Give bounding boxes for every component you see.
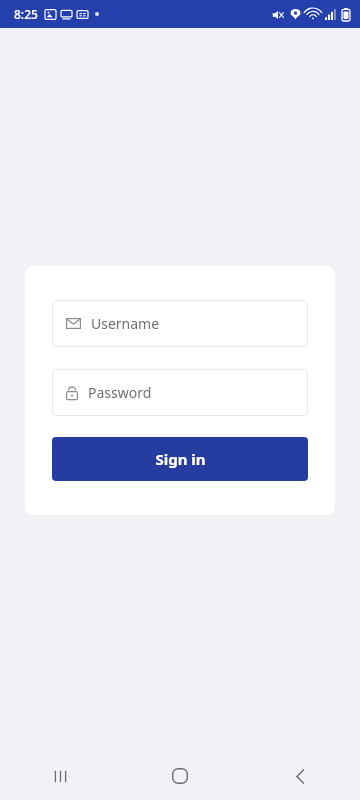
staticText: Username (91, 314, 160, 333)
staticText: Password (88, 383, 152, 402)
button[interactable]: Home (156, 752, 204, 800)
staticText: 8:25 (14, 6, 38, 22)
button[interactable]: Recent apps (36, 752, 84, 800)
staticText: Sign in (155, 449, 206, 469)
button[interactable]: Username (52, 300, 308, 347)
button[interactable]: Sign in (52, 437, 308, 481)
button[interactable]: Back (276, 752, 324, 800)
button[interactable]: Password (52, 369, 308, 416)
